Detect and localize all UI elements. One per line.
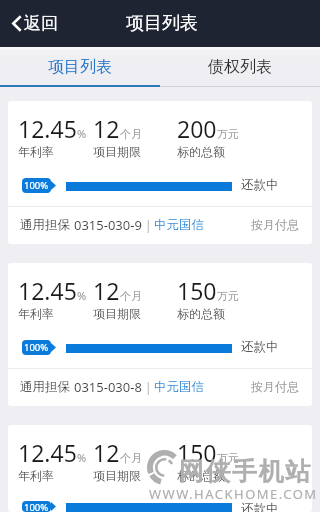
staticText: 个月	[120, 451, 142, 465]
button[interactable]: 项目列表	[0, 47, 160, 87]
staticText: %	[77, 450, 87, 465]
staticText: 12	[93, 113, 120, 144]
staticText: 年利率	[18, 144, 54, 159]
staticText: 项目期限	[93, 144, 141, 159]
staticText: 项目期限	[93, 468, 141, 483]
staticText: 标的总额	[177, 144, 225, 159]
staticText: 年利率	[18, 306, 54, 321]
staticText: 0315-030-9	[74, 216, 142, 234]
staticText: 12	[93, 275, 120, 306]
staticText: 中元国信	[154, 217, 204, 233]
staticText: 12.45	[18, 437, 77, 468]
staticText: 万元	[217, 289, 239, 303]
staticText: 150	[177, 275, 217, 306]
button[interactable]: 债权列表	[160, 47, 320, 87]
staticText: 项目期限	[93, 306, 141, 321]
staticText: 个月	[120, 289, 142, 303]
staticText: 100%	[24, 341, 49, 354]
staticText: 100%	[24, 501, 49, 512]
staticText: 按月付息	[251, 217, 299, 232]
button[interactable]: 返回	[3, 7, 64, 40]
staticText: 中元国信	[154, 379, 204, 395]
button[interactable]: 12.45	[8, 263, 312, 406]
staticText: |	[145, 379, 152, 395]
staticText: 还款中	[241, 339, 279, 355]
staticText: 12.45	[18, 275, 77, 306]
staticText: 万元	[217, 127, 239, 141]
staticText: 通用担保	[20, 379, 70, 395]
staticText: |	[145, 217, 152, 233]
staticText: 网侠手机站	[178, 456, 311, 487]
staticText: 通用担保	[20, 217, 70, 233]
staticText: 100%	[24, 179, 49, 192]
staticText: 150	[177, 437, 217, 468]
button[interactable]: 12.45	[8, 101, 312, 244]
staticText: 万元	[217, 451, 239, 465]
staticText: 项目列表	[126, 12, 198, 35]
staticText: 0315-030-8	[74, 378, 142, 396]
staticText: 项目列表	[48, 57, 112, 77]
staticText: 个月	[120, 127, 142, 141]
staticText: 债权列表	[208, 57, 272, 77]
staticText: 标的总额	[177, 468, 225, 483]
staticText: WWW.HACKHOME.COM	[149, 485, 318, 503]
button[interactable]: 12.45	[8, 425, 312, 512]
staticText: 还款中	[241, 501, 279, 512]
staticText: 还款中	[241, 177, 279, 193]
staticText: 按月付息	[251, 379, 299, 394]
staticText: 12	[93, 437, 120, 468]
staticText: 200	[177, 113, 217, 144]
staticText: 12.45	[18, 113, 77, 144]
staticText: 标的总额	[177, 306, 225, 321]
staticText: %	[77, 126, 87, 141]
staticText: 年利率	[18, 468, 54, 483]
staticText: 返回	[24, 13, 58, 34]
staticText: %	[77, 288, 87, 303]
